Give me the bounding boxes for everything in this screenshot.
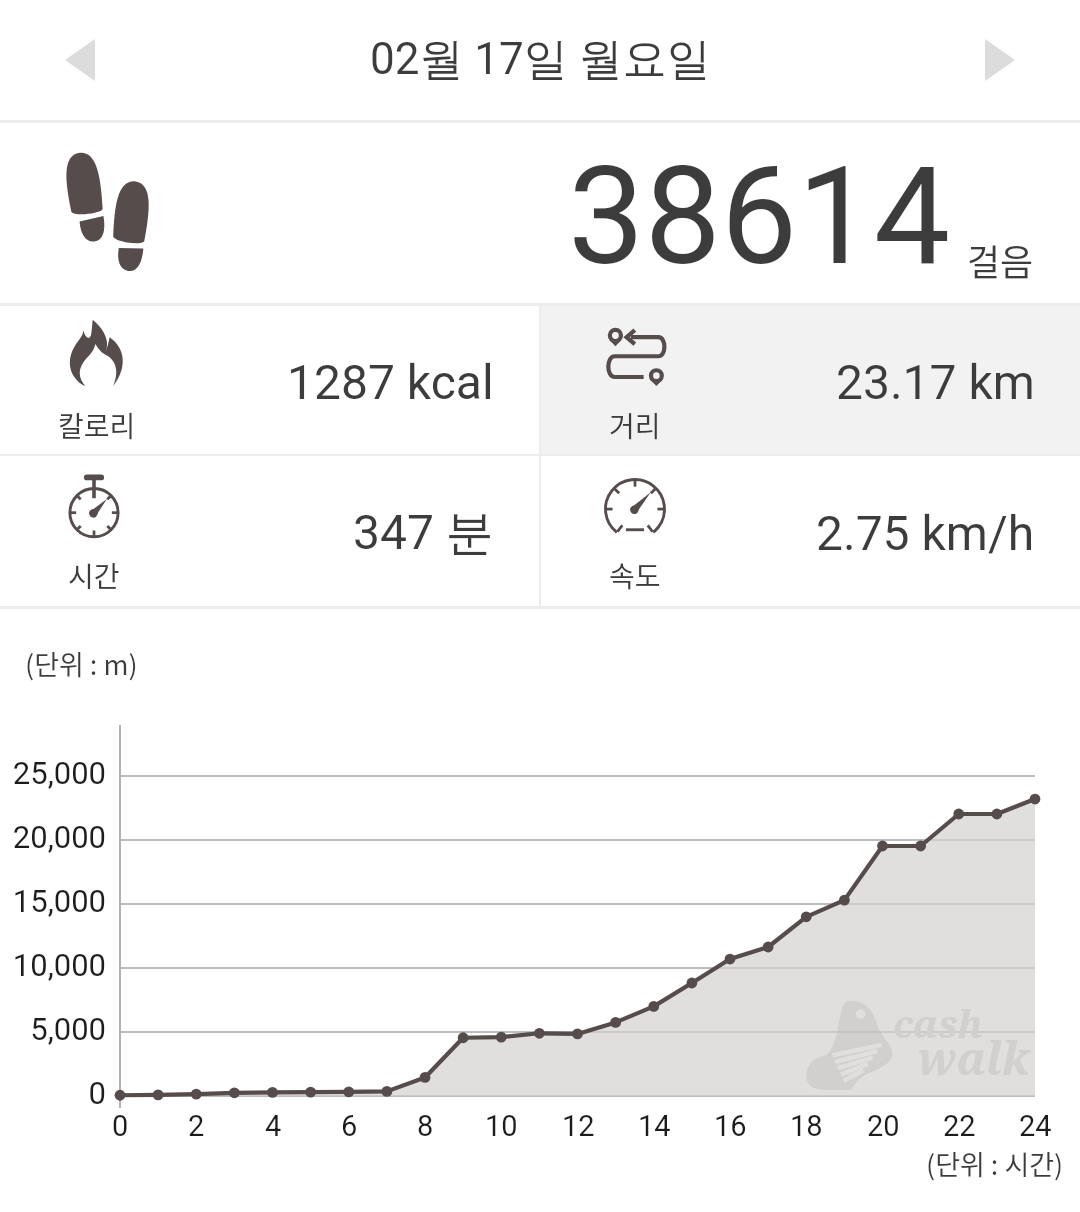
- staticText: 2: [188, 1109, 205, 1143]
- staticText: 5,000: [30, 1011, 106, 1047]
- staticText: 2.75 km/h: [816, 505, 1035, 561]
- staticText: 칼로리: [58, 405, 136, 446]
- staticText: 4: [265, 1109, 282, 1143]
- staticText: 38614: [568, 137, 951, 296]
- staticText: 시간: [68, 555, 120, 596]
- button[interactable]: 칼로리: [0, 306, 539, 454]
- staticText: (단위 : m): [25, 644, 138, 683]
- button[interactable]: Previous day: [40, 20, 120, 100]
- staticText: 20,000: [12, 819, 106, 855]
- staticText: 1287 kcal: [287, 354, 494, 410]
- staticText: 22: [943, 1109, 976, 1143]
- staticText: (단위 : 시간): [926, 1144, 1064, 1183]
- staticText: 속도: [609, 555, 661, 596]
- staticText: 02월 17일 월요일: [370, 32, 711, 87]
- button[interactable]: 38614: [0, 123, 1080, 303]
- staticText: walk: [917, 1027, 1030, 1088]
- staticText: 16: [714, 1109, 747, 1143]
- button[interactable]: Next day: [960, 20, 1040, 100]
- staticText: 14: [638, 1109, 671, 1143]
- staticText: 24: [1019, 1109, 1052, 1143]
- staticText: 347 분: [353, 503, 494, 563]
- staticText: 10,000: [12, 947, 106, 983]
- staticText: 거리: [609, 405, 661, 446]
- staticText: cash: [893, 997, 983, 1049]
- button[interactable]: 거리: [541, 306, 1080, 454]
- staticText: 20: [867, 1109, 900, 1143]
- staticText: 0: [112, 1109, 129, 1143]
- button[interactable]: 속도: [541, 456, 1080, 606]
- staticText: 23.17 km: [836, 354, 1035, 410]
- staticText: 걸음: [967, 234, 1034, 286]
- staticText: 18: [790, 1109, 823, 1143]
- staticText: 8: [417, 1109, 434, 1143]
- button[interactable]: 시간: [0, 456, 539, 606]
- staticText: 10: [485, 1109, 518, 1143]
- staticText: 12: [562, 1109, 595, 1143]
- staticText: 15,000: [12, 883, 106, 919]
- staticText: 0: [88, 1075, 106, 1111]
- staticText: 25,000: [12, 755, 106, 791]
- staticText: 6: [341, 1109, 358, 1143]
